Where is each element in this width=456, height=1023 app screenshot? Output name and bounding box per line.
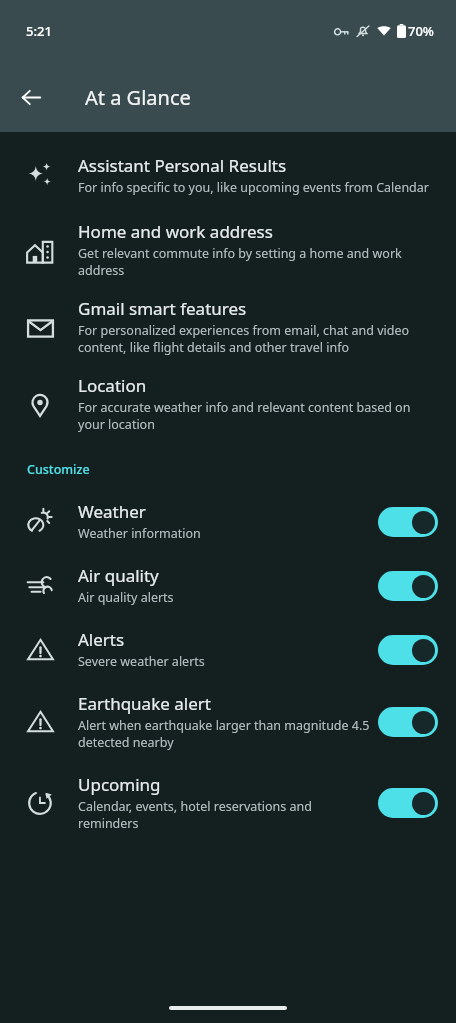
button[interactable]: Air quality toggle bbox=[378, 570, 438, 601]
button[interactable]: Upcoming bbox=[0, 773, 456, 832]
staticText: For personalized experiences from email,… bbox=[78, 322, 436, 356]
staticText: Alerts bbox=[78, 628, 125, 651]
staticText: Upcoming bbox=[78, 773, 161, 796]
staticText: Calendar, events, hotel reservations and… bbox=[78, 798, 370, 832]
staticText: Location bbox=[78, 374, 147, 397]
staticText: Air quality bbox=[78, 564, 159, 587]
button[interactable]: Weather toggle bbox=[378, 506, 438, 537]
staticText: For accurate weather info and relevant c… bbox=[78, 399, 436, 433]
staticText: 5:21 bbox=[26, 22, 52, 40]
staticText: Weather information bbox=[78, 525, 201, 542]
staticText: Earthquake alert bbox=[78, 692, 211, 715]
button[interactable]: Earthquake alert bbox=[0, 692, 456, 751]
staticText: Gmail smart features bbox=[78, 297, 247, 320]
button[interactable]: Earthquake alert toggle bbox=[378, 706, 438, 737]
staticText: Assistant Personal Results bbox=[78, 154, 287, 177]
staticText: Severe weather alerts bbox=[78, 653, 205, 670]
staticText: Air quality alerts bbox=[78, 589, 174, 606]
button[interactable]: Gmail smart features bbox=[0, 297, 456, 356]
button[interactable]: Back bbox=[14, 80, 48, 114]
button[interactable]: Location bbox=[0, 374, 456, 433]
button[interactable]: Alerts bbox=[0, 628, 456, 670]
staticText: At a Glance bbox=[85, 84, 191, 111]
button[interactable]: Assistant Personal Results bbox=[0, 154, 456, 196]
staticText: Home and work address bbox=[78, 220, 273, 243]
staticText: Customize bbox=[27, 461, 90, 478]
button[interactable]: Upcoming toggle bbox=[378, 787, 438, 818]
button[interactable]: Home and work address bbox=[0, 220, 456, 279]
staticText: Get relevant commute info by setting a h… bbox=[78, 245, 436, 279]
staticText: For info specific to you, like upcoming … bbox=[78, 179, 429, 196]
button[interactable]: Air quality bbox=[0, 564, 456, 606]
staticText: 70% bbox=[408, 22, 434, 40]
button[interactable]: Weather bbox=[0, 500, 456, 542]
staticText: Weather bbox=[78, 500, 146, 523]
button[interactable]: Alerts toggle bbox=[378, 634, 438, 665]
staticText: Alert when earthquake larger than magnit… bbox=[78, 717, 370, 751]
